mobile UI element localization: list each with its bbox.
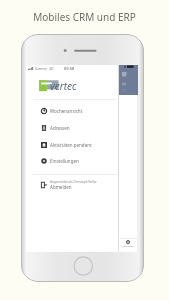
button[interactable]: Wochenansicht	[26, 103, 117, 119]
button[interactable]: Angemeldet als Christoph Roller	[26, 177, 117, 193]
staticText: vertec	[50, 79, 77, 93]
staticText: Wochenansicht	[50, 108, 83, 114]
button[interactable]: Adressen	[26, 120, 117, 136]
button[interactable]: Einstellungen	[26, 153, 117, 169]
staticText: Einstellungen	[50, 158, 79, 164]
staticText: Aktivitäten pendent	[50, 142, 92, 148]
button[interactable]: Leistungen	[118, 240, 138, 248]
staticText: Leistungen	[122, 245, 134, 248]
staticText: Mobiles CRM und ERP	[0, 10, 169, 24]
staticText: Adressen	[50, 125, 70, 131]
staticText: Abmelden	[50, 184, 72, 190]
staticText: Sunrise	[35, 66, 47, 71]
staticText: 4G	[49, 66, 54, 71]
button[interactable]: Aktivitäten pendent	[26, 137, 117, 153]
staticText: 09:58	[64, 66, 75, 71]
staticText: Angemeldet als Christoph Roller	[50, 180, 97, 184]
